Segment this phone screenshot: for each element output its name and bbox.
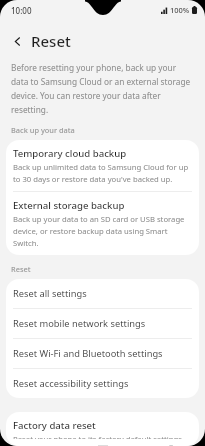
staticText: Back up unlimited data to Samsung Cloud …: [13, 162, 192, 184]
staticText: Reset accessibility settings: [13, 377, 129, 390]
staticText: Reset your phone to its factory default …: [13, 434, 192, 439]
staticText: Factory data reset: [13, 419, 96, 432]
staticText: Temporary cloud backup: [13, 147, 127, 160]
staticText: Back up your data to an SD card or USB s…: [13, 214, 192, 248]
staticText: 10:00: [11, 5, 32, 16]
button[interactable]: Reset accessibility settings: [6, 369, 199, 398]
button[interactable]: Back: [6, 30, 28, 52]
staticText: Reset Wi-Fi and Bluetooth settings: [13, 347, 163, 360]
button[interactable]: Reset all settings: [6, 279, 199, 308]
staticText: Before resetting your phone, back up you…: [11, 62, 194, 115]
staticText: Reset all settings: [13, 287, 87, 300]
button[interactable]: Reset Wi-Fi and Bluetooth settings: [6, 339, 199, 368]
button[interactable]: External storage backup: [6, 192, 199, 255]
button[interactable]: Temporary cloud backup: [6, 140, 199, 191]
button[interactable]: Factory data reset: [6, 412, 199, 446]
staticText: 100%: [170, 5, 190, 15]
staticText: External storage backup: [13, 199, 125, 212]
staticText: Back up your data: [11, 125, 75, 135]
staticText: Reset: [11, 264, 31, 274]
button[interactable]: Reset mobile network settings: [6, 309, 199, 338]
staticText: Reset mobile network settings: [13, 317, 146, 330]
staticText: Reset: [31, 31, 71, 51]
